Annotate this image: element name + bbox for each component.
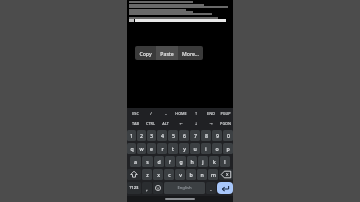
staticText: CTRL — [146, 121, 155, 126]
button[interactable]: Enter — [217, 182, 233, 194]
button[interactable]: z — [142, 169, 152, 180]
button[interactable]: a — [130, 156, 141, 167]
staticText: s — [146, 158, 149, 165]
staticText: 0 — [227, 132, 230, 139]
button[interactable]: x — [153, 169, 163, 180]
button[interactable]: CTRL — [143, 118, 158, 128]
button[interactable]: PGUP — [218, 108, 233, 118]
staticText: Paste — [160, 50, 174, 57]
staticText: q — [130, 145, 134, 152]
staticText: → — [209, 121, 213, 125]
button[interactable]: d — [154, 156, 164, 167]
button[interactable]: t — [168, 143, 178, 154]
button[interactable]: Copy — [135, 46, 156, 60]
button[interactable]: ← — [173, 118, 188, 128]
staticText: HOME — [175, 111, 187, 116]
button[interactable]: / — [143, 108, 158, 118]
button[interactable]: 4 — [157, 130, 167, 141]
staticText: b — [189, 171, 193, 178]
button[interactable]: s — [142, 156, 153, 167]
button[interactable]: j — [198, 156, 208, 167]
button[interactable]: , — [142, 182, 152, 194]
button[interactable]: o — [212, 143, 222, 154]
button[interactable]: 2 — [137, 130, 146, 141]
staticText: j — [202, 158, 204, 165]
button[interactable]: l — [220, 156, 230, 167]
staticText: n — [200, 171, 204, 178]
button[interactable]: → — [203, 118, 218, 128]
button[interactable]: h — [187, 156, 197, 167]
button[interactable]: f — [165, 156, 175, 167]
button[interactable]: e — [147, 143, 156, 154]
staticText: 5 — [172, 132, 175, 139]
staticText: 9 — [216, 132, 219, 139]
button[interactable]: m — [208, 169, 218, 180]
button[interactable]: 8 — [201, 130, 211, 141]
staticText: / — [150, 111, 152, 116]
staticText: h — [190, 158, 194, 165]
staticText: ALT — [162, 121, 169, 126]
button[interactable]: p — [223, 143, 233, 154]
button[interactable]: q — [127, 143, 136, 154]
button[interactable]: More… — [178, 46, 203, 60]
button[interactable]: ALT — [158, 118, 173, 128]
button[interactable]: 0 — [223, 130, 233, 141]
staticText: Copy — [139, 50, 152, 57]
button[interactable]: y — [179, 143, 189, 154]
staticText: – — [165, 111, 167, 116]
button[interactable]: END — [203, 108, 218, 118]
staticText: w — [139, 145, 144, 152]
button[interactable]: b — [186, 169, 196, 180]
button[interactable]: 3 — [147, 130, 156, 141]
button[interactable]: v — [175, 169, 185, 180]
button[interactable]: i — [201, 143, 211, 154]
staticText: 8 — [205, 132, 208, 139]
staticText: f — [169, 158, 171, 165]
button[interactable]: . — [206, 182, 216, 194]
staticText: i — [205, 145, 207, 152]
staticText: 3 — [150, 132, 153, 139]
button[interactable]: PGDN — [218, 118, 233, 128]
staticText: d — [157, 158, 161, 165]
button[interactable]: ESC — [127, 108, 143, 118]
button[interactable]: 7 — [190, 130, 200, 141]
staticText: More… — [182, 50, 199, 57]
staticText: PGDN — [220, 121, 231, 126]
button[interactable]: 5 — [168, 130, 178, 141]
button[interactable]: n — [197, 169, 207, 180]
button[interactable]: 1 — [127, 130, 136, 141]
staticText: t — [172, 145, 174, 152]
button[interactable]: g — [176, 156, 186, 167]
staticText: o — [215, 145, 219, 152]
button[interactable]: 9 — [212, 130, 222, 141]
staticText: ESC — [132, 111, 139, 116]
button[interactable]: HOME — [173, 108, 188, 118]
staticText: ?123 — [129, 185, 139, 191]
staticText: , — [146, 185, 148, 192]
staticText: m — [211, 171, 216, 178]
staticText: e — [150, 145, 153, 152]
button[interactable]: ↑ — [188, 108, 203, 118]
button[interactable]: Shift — [127, 169, 141, 180]
button[interactable]: Paste — [156, 46, 178, 60]
staticText: END — [207, 111, 215, 116]
button[interactable]: w — [137, 143, 146, 154]
button[interactable]: – — [158, 108, 173, 118]
button[interactable]: ↓ — [188, 118, 203, 128]
button[interactable]: TAB — [127, 118, 143, 128]
staticText: 4 — [161, 132, 164, 139]
button[interactable]: u — [190, 143, 200, 154]
staticText: PGUP — [220, 111, 231, 116]
staticText: c — [168, 171, 171, 178]
staticText: English — [177, 185, 192, 191]
staticText: ← — [179, 121, 183, 125]
button[interactable]: 6 — [179, 130, 189, 141]
button[interactable]: Backspace — [219, 169, 233, 180]
button[interactable]: k — [209, 156, 219, 167]
button[interactable]: Emoji — [153, 182, 163, 194]
button[interactable]: English — [164, 182, 205, 194]
button[interactable]: r — [157, 143, 167, 154]
staticText: g — [179, 158, 183, 165]
button[interactable]: c — [164, 169, 174, 180]
button[interactable]: ?123 — [127, 182, 141, 194]
